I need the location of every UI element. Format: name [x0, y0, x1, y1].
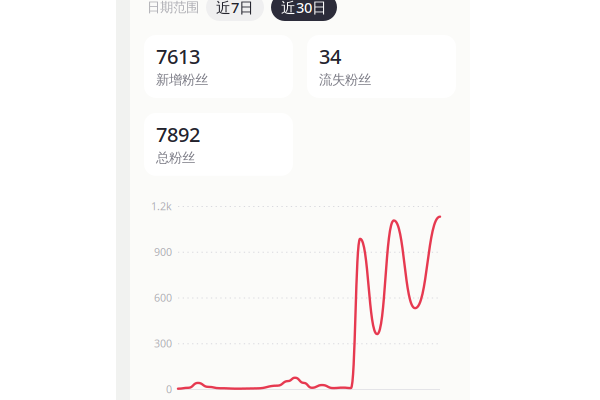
staticText: 总粉丝	[156, 149, 195, 166]
staticText: 1.2k	[151, 199, 172, 213]
staticText: 近7日	[216, 0, 254, 17]
button[interactable]: 34	[307, 35, 456, 98]
staticText: 流失粉丝	[319, 72, 371, 88]
staticText: 近30日	[281, 0, 327, 17]
staticText: 900	[154, 245, 172, 259]
button[interactable]: 近30日	[271, 0, 337, 21]
staticText: 7613	[156, 43, 200, 70]
staticText: 日期范围	[147, 0, 199, 15]
staticText: 新增粉丝	[156, 72, 208, 88]
staticText: 300	[154, 336, 172, 350]
staticText: 600	[154, 290, 172, 305]
button[interactable]: 7613	[144, 35, 293, 98]
staticText: 7892	[156, 121, 200, 147]
staticText: 34	[319, 43, 341, 70]
staticText: 0	[166, 382, 172, 396]
button[interactable]: 7892	[144, 113, 293, 176]
button[interactable]: 近7日	[206, 0, 264, 21]
